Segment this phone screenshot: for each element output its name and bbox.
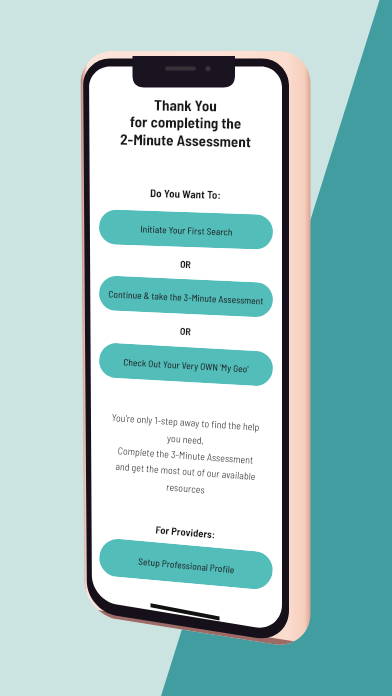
- staticText: OR: [89, 320, 282, 342]
- staticText: OR: [89, 254, 282, 274]
- staticText: You're only 1-step away to find the help: [89, 410, 282, 434]
- staticText: For Providers:: [89, 517, 282, 546]
- staticText: Complete the 3-Minute Assessment: [89, 442, 282, 468]
- staticText: for completing the: [89, 111, 282, 133]
- button[interactable]: Initiate Your First Search: [98, 209, 274, 250]
- staticText: resources: [89, 475, 282, 501]
- staticText: Setup Professional Profile: [138, 555, 235, 574]
- staticText: Initiate Your First Search: [140, 222, 233, 236]
- staticText: Thank You: [89, 95, 282, 115]
- staticText: Check Out Your Very OWN 'My Geo': [123, 355, 249, 374]
- button[interactable]: Setup Professional Profile: [98, 537, 274, 591]
- staticText: you need,: [89, 426, 282, 452]
- staticText: 2-Minute Assessment: [89, 129, 282, 151]
- button[interactable]: Check Out Your Very OWN 'My Geo': [98, 342, 274, 387]
- staticText: Do You Want To:: [89, 184, 282, 203]
- staticText: Continue & take the 3-Minute Assessment: [108, 287, 264, 305]
- staticText: and get the most out of our available: [89, 458, 282, 484]
- button[interactable]: Continue & take the 3-Minute Assessment: [98, 275, 274, 318]
